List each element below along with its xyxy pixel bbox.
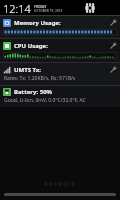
staticText: Rates: Tx: 1.20KB/s, Rx: 571B/s <box>4 75 76 82</box>
button[interactable]: Memory Usage: 21% (109MB) <box>0 16 120 38</box>
button[interactable]: Configure <box>108 65 117 74</box>
button[interactable]: Configure <box>108 18 117 27</box>
staticText: Battery: 50% (Charging) <box>14 88 61 96</box>
staticText: UMTS Tx: 10.07MB, Rx: 1.82MB <box>14 66 61 74</box>
staticText: CPU Usage: 25% (327.68MHz) <box>14 42 61 50</box>
button[interactable]: UMTS Tx: 10.07MB, Rx: 1.82MB <box>0 63 120 85</box>
staticText: Memory Usage: 21% (109MB) <box>14 19 61 27</box>
button[interactable]: Close notification shade <box>4 193 116 196</box>
button[interactable]: Battery: 50% (Charging) <box>0 86 120 107</box>
staticText: OCTOBER 19, 2012 <box>34 9 63 13</box>
button[interactable]: CPU Usage: 25% (327.68MHz) <box>0 39 120 62</box>
staticText: Good, Li-Ion, 0mV, 0.0°C/32.0°F, AC <box>4 97 86 104</box>
staticText: 12:14 <box>3 1 31 16</box>
button[interactable]: Configure <box>108 41 117 50</box>
staticText: ANDROID <box>44 181 77 188</box>
staticText: FRIDAY <box>34 4 47 9</box>
button[interactable]: Settings <box>83 1 97 15</box>
